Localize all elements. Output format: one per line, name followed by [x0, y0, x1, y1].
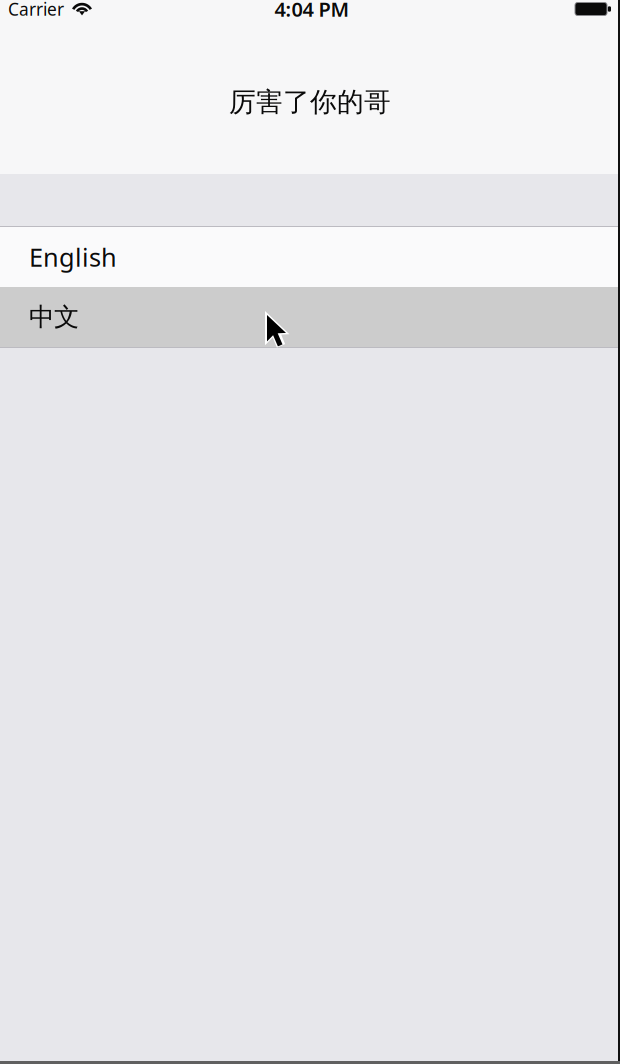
staticText: 4:04 PM	[274, 0, 349, 22]
button[interactable]: English	[0, 227, 620, 287]
staticText: 中文	[29, 301, 79, 332]
staticText: Carrier	[8, 0, 64, 20]
staticText: English	[29, 240, 117, 274]
staticText: 厉害了你的哥	[229, 86, 391, 118]
button[interactable]: 中文	[0, 287, 620, 347]
